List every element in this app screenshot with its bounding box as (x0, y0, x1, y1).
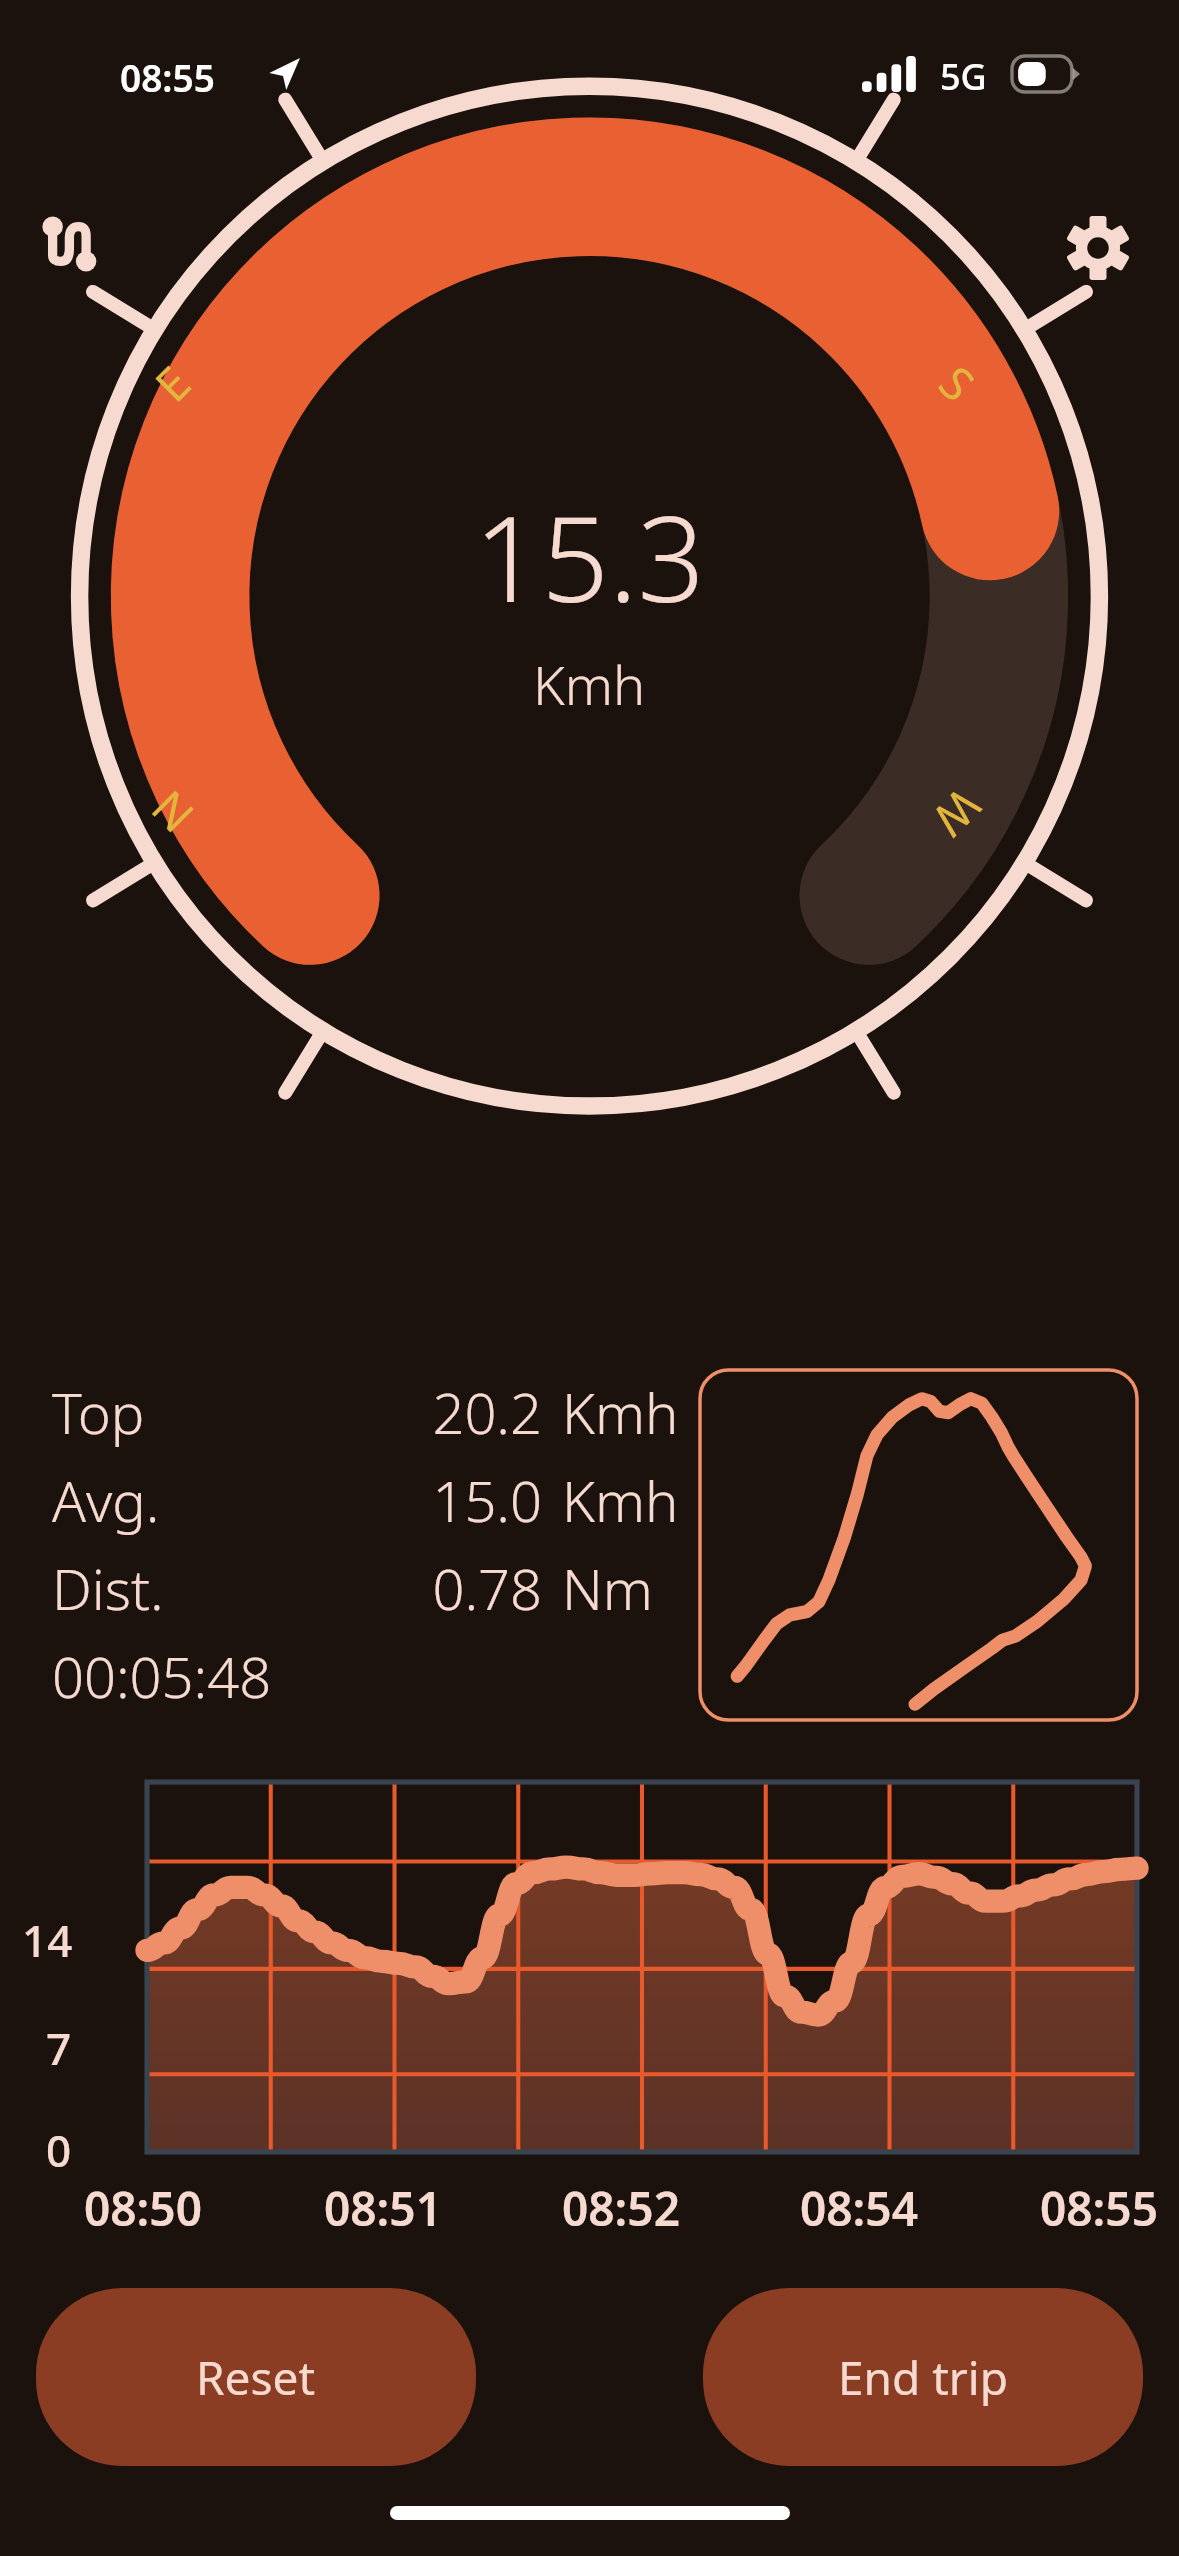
button[interactable] (700, 1370, 1137, 1720)
staticText: 14 (22, 1910, 73, 1970)
staticText: 5G (940, 52, 987, 101)
staticText: N (137, 778, 207, 847)
staticText: Avg. (52, 1462, 160, 1538)
staticText: Dist. (52, 1550, 164, 1626)
button[interactable]: Settings (1042, 192, 1154, 304)
staticText: 08:51 (324, 2177, 442, 2240)
staticText: 08:50 (84, 2177, 202, 2240)
button[interactable]: Route (18, 192, 122, 296)
staticText: 7 (46, 2018, 72, 2078)
staticText: Kmh (533, 647, 646, 721)
staticText: E (141, 352, 204, 415)
staticText: 20.2 (342, 1374, 542, 1450)
staticText: Kmh (562, 1374, 692, 1450)
staticText: Reset (196, 2346, 316, 2409)
staticText: 08:54 (800, 2177, 918, 2240)
staticText: 00:05:48 (52, 1638, 272, 1714)
staticText: Nm (562, 1550, 692, 1626)
staticText: 08:55 (1040, 2177, 1158, 2240)
staticText: 0.78 (342, 1550, 542, 1626)
staticText: 15.3 (474, 476, 705, 637)
staticText: S (926, 352, 989, 415)
staticText: 08:52 (562, 2177, 680, 2240)
button[interactable]: End trip (703, 2288, 1143, 2466)
staticText: End trip (838, 2346, 1009, 2409)
staticText: Top (52, 1374, 145, 1450)
staticText: W (920, 775, 995, 850)
button[interactable]: Reset (36, 2288, 476, 2466)
staticText: Kmh (562, 1462, 692, 1538)
staticText: 08:55 (120, 52, 215, 102)
staticText: 15.0 (342, 1462, 542, 1538)
staticText: 0 (46, 2120, 72, 2180)
